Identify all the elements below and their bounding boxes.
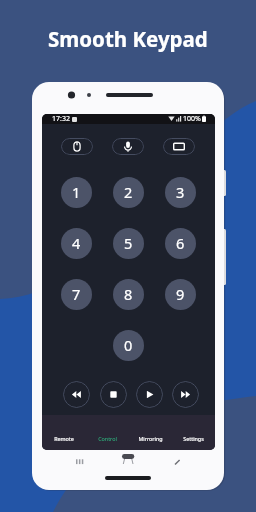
staticText: 8 (124, 284, 133, 304)
staticText: 17:32 (52, 114, 70, 124)
button[interactable]: 4 (61, 228, 92, 259)
staticText: Mirroring (138, 435, 163, 442)
button[interactable]: Remote (42, 415, 86, 450)
staticText: 4 (72, 233, 81, 253)
staticText: 6 (176, 233, 185, 253)
staticText: 7 (72, 284, 81, 304)
staticText: 0 (124, 335, 133, 355)
button[interactable]: 6 (165, 228, 196, 259)
staticText: Smooth Keypad (48, 25, 208, 53)
button[interactable]: 3 (165, 177, 196, 208)
button[interactable]: 2 (113, 177, 144, 208)
staticText: 5 (124, 233, 133, 253)
button[interactable]: Mouse (61, 138, 93, 155)
button[interactable]: 1 (61, 177, 92, 208)
staticText: 9 (176, 284, 185, 304)
staticText: 1 (72, 182, 81, 202)
button[interactable]: Keyboard (163, 138, 195, 155)
button[interactable]: 8 (113, 279, 144, 310)
staticText: 2 (124, 182, 133, 202)
button[interactable]: Stop (100, 381, 127, 408)
staticText: Settings (183, 435, 204, 442)
staticText: Remote (54, 435, 74, 442)
button[interactable]: Mirroring (129, 415, 172, 450)
button[interactable]: 0 (113, 330, 144, 361)
staticText: 3 (176, 182, 185, 202)
button[interactable]: 5 (113, 228, 144, 259)
button[interactable]: Fast forward (172, 381, 199, 408)
staticText: Control (98, 435, 117, 442)
staticText: 100% (183, 114, 201, 124)
button[interactable]: Play (136, 381, 163, 408)
button[interactable]: 9 (165, 279, 196, 310)
button[interactable]: 7 (61, 279, 92, 310)
button[interactable]: Rewind (63, 381, 90, 408)
button[interactable]: Settings (172, 415, 215, 450)
button[interactable]: Voice input (112, 138, 144, 155)
button[interactable]: Control (86, 415, 129, 450)
